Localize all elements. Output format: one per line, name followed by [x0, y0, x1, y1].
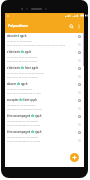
- staticText: Pour aboutir à un accord il faut que l'o…: [7, 43, 66, 46]
- button[interactable]: Favorite: [78, 91, 81, 94]
- staticText: to abstain from doing something: [7, 71, 45, 74]
- button[interactable]: Play audio: [78, 99, 81, 102]
- button[interactable]: Favorite: [78, 59, 81, 62]
- button[interactable]: Favorite: [78, 75, 81, 78]
- staticText: S'abstenir de toute fumerie: [7, 75, 38, 78]
- button[interactable]: être accompagné de qqch: [5, 129, 84, 145]
- button[interactable]: s'abstenir de qqch: [5, 49, 84, 65]
- staticText: s'abstenir de faire qqch: [7, 66, 39, 70]
- staticText: J'accepte de participer à l'étude: [7, 107, 42, 110]
- button[interactable]: Add new entry: [70, 153, 79, 162]
- button[interactable]: Play audio: [78, 67, 81, 70]
- staticText: Pour ne pas abuser de sa part: [7, 91, 41, 94]
- staticText: aboutir à qqch: [7, 34, 27, 38]
- button[interactable]: Favorite: [78, 107, 81, 110]
- button[interactable]: Favorite: [78, 139, 81, 142]
- staticText: Il était accompagné de sa fille: [7, 123, 41, 126]
- button[interactable]: s'abstenir de faire qqch: [5, 65, 84, 81]
- button[interactable]: abuser de qqch: [5, 81, 84, 97]
- button[interactable]: Play audio: [78, 131, 81, 134]
- staticText: s'abstenir de qqch: [7, 50, 32, 54]
- button[interactable]: aboutir à qqch: [5, 33, 84, 49]
- button[interactable]: Play audio: [78, 35, 81, 38]
- staticText: to abuse of something: [7, 87, 33, 90]
- staticText: Prépositions: [8, 24, 28, 28]
- button[interactable]: Play audio: [78, 83, 81, 86]
- staticText: Il était accompagné de sa fille: [7, 139, 41, 142]
- staticText: accompanied by something: [7, 135, 39, 138]
- staticText: to result in something: [7, 39, 32, 42]
- button[interactable]: Favorite: [78, 43, 81, 46]
- button[interactable]: More options: [76, 19, 82, 33]
- button[interactable]: Play audio: [78, 51, 81, 54]
- staticText: abuser de qqch: [7, 82, 28, 86]
- button[interactable]: Search: [67, 19, 76, 33]
- staticText: être accompagné de qqch: [7, 130, 42, 134]
- staticText: accompanied by something: [7, 119, 39, 122]
- button[interactable]: être accompagné de qqch: [5, 113, 84, 129]
- staticText: être accompagné de qqch: [7, 114, 42, 118]
- staticText: accepter de faire qqch: [7, 98, 37, 102]
- staticText: to agree to do something: [7, 103, 36, 106]
- button[interactable]: accepter de faire qqch: [5, 97, 84, 113]
- staticText: S'abstenir de toute fumerie: [7, 59, 38, 62]
- button[interactable]: Favorite: [78, 123, 81, 126]
- button[interactable]: Play audio: [78, 115, 81, 118]
- staticText: to abstain from something: [7, 55, 37, 58]
